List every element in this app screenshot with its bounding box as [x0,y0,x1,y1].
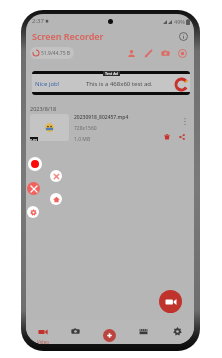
button[interactable]: Add [103,329,116,342]
button[interactable]: New recording [159,290,182,313]
staticText: 1.0 MB [74,136,91,143]
button[interactable]: Record [176,47,189,60]
staticText: Test Ad [105,71,118,76]
button[interactable]: Test Ad [32,71,190,95]
staticText: 728x1560 [74,125,97,132]
staticText: Video [37,339,49,344]
staticText: Screen Recorder [32,30,104,42]
button[interactable]: Close [27,182,40,195]
button[interactable]: Home [50,193,62,205]
staticText: 2:37 [32,17,44,25]
button[interactable]: Video [26,320,59,344]
staticText: 51.9/44.75 B [41,50,71,57]
button[interactable]: Start recording [28,157,42,171]
button[interactable]: Tab [160,320,194,344]
staticText: This is a 468x60 test ad. [86,80,153,88]
button[interactable]: Settings [27,206,39,218]
button[interactable]: Share [177,132,187,142]
staticText: Nice job! [35,80,60,88]
button[interactable]: Tab [59,320,92,344]
button[interactable]: Microphone [125,47,138,60]
button[interactable]: 51.9/44.75 B [30,47,74,59]
button[interactable]: Tools [50,170,62,182]
staticText: 20230918_802457.mp4 [74,114,129,121]
button[interactable]: Screenshot [159,47,172,60]
button[interactable]: Brush [142,47,155,60]
button[interactable]: 00:03 [26,113,194,143]
button[interactable]: Info [177,30,190,43]
staticText: 2023/8/18 [30,105,57,112]
staticText: 00:03 [30,138,37,141]
button[interactable]: Tab [126,320,160,344]
button[interactable]: More options [180,116,190,126]
staticText: 49% [174,18,185,25]
button[interactable]: Delete [162,132,172,142]
